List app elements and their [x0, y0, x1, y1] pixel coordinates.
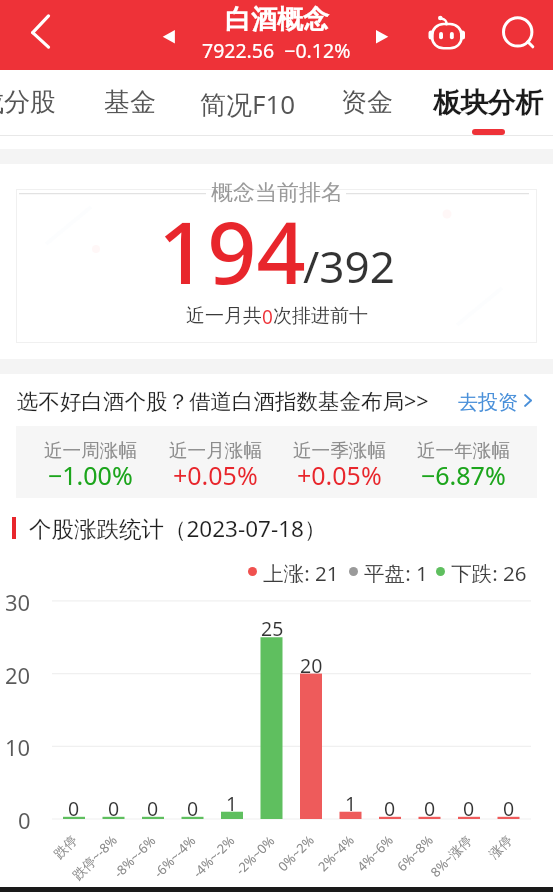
staticText: 近一周涨幅 — [44, 439, 137, 462]
staticText: 基金 — [104, 86, 156, 119]
staticText: 成分股 — [0, 86, 56, 119]
staticText: 上涨: 21 — [263, 559, 339, 583]
staticText: −1.00% — [48, 458, 133, 492]
staticText: 20 — [300, 652, 323, 679]
button[interactable]: AI assistant — [423, 8, 471, 56]
button[interactable]: Search — [494, 8, 542, 56]
staticText: 近一季涨幅 — [293, 439, 386, 462]
staticText: -8%~-6% — [110, 831, 160, 881]
button[interactable]: 成分股 — [0, 70, 62, 136]
staticText: 近一月涨幅 — [169, 439, 262, 462]
staticText: -2%~0% — [231, 831, 279, 879]
staticText: 0 — [108, 795, 120, 822]
staticText: 次排进前十 — [273, 304, 368, 328]
staticText: 25 — [261, 615, 284, 642]
staticText: 4%~6% — [353, 831, 397, 875]
staticText: 1 — [226, 790, 238, 817]
button[interactable]: Previous sector — [148, 16, 190, 58]
staticText: 平盘: 1 — [364, 559, 428, 583]
button[interactable]: 简况F10 — [196, 70, 300, 136]
staticText: +0.05% — [173, 458, 258, 492]
button[interactable]: 选不好白酒个股？借道白酒指数基金布局>> — [0, 381, 553, 421]
staticText: 1 — [345, 790, 357, 817]
staticText: 6%~8% — [393, 831, 437, 875]
staticText: 7922.56 −0.12% — [202, 37, 351, 64]
button[interactable]: 资金 — [335, 70, 399, 136]
staticText: -4%~-2% — [189, 831, 239, 881]
staticText: 0 — [424, 795, 436, 822]
staticText: 资金 — [341, 86, 393, 119]
staticText: 个股涨跌统计（2023-07-18） — [29, 513, 327, 543]
staticText: 0 — [262, 304, 273, 330]
staticText: 0 — [68, 795, 80, 822]
staticText: 简况F10 — [200, 86, 296, 122]
staticText: 0%~2% — [274, 831, 318, 875]
button[interactable]: 基金 — [98, 70, 162, 136]
staticText: +0.05% — [297, 458, 382, 492]
staticText: 0 — [187, 795, 199, 822]
staticText: 194 — [158, 192, 306, 309]
button[interactable]: 板块分析 — [428, 70, 548, 136]
staticText: 板块分析 — [433, 86, 543, 121]
staticText: 白酒概念 — [225, 3, 329, 36]
staticText: 30 — [5, 587, 31, 617]
staticText: 20 — [5, 660, 31, 690]
staticText: 10 — [5, 732, 31, 762]
staticText: 0 — [384, 795, 396, 822]
staticText: /392 — [303, 236, 395, 296]
staticText: 0 — [18, 805, 31, 835]
staticText: 涨停 — [485, 832, 515, 862]
staticText: -6%~-4% — [150, 831, 200, 881]
button[interactable]: Next sector — [362, 16, 404, 58]
staticText: 跌停 — [50, 832, 80, 862]
staticText: 0 — [503, 795, 515, 822]
button[interactable]: Back — [12, 9, 64, 61]
staticText: 概念当前排名 — [211, 179, 343, 207]
staticText: 8%~涨停 — [426, 831, 476, 881]
staticText: 跌停~-8% — [68, 831, 121, 883]
staticText: 近一月共 — [186, 304, 262, 328]
staticText: 0 — [147, 795, 159, 822]
staticText: 0 — [463, 795, 475, 822]
staticText: 近一年涨幅 — [417, 439, 510, 462]
staticText: 2%~4% — [314, 831, 358, 875]
staticText: −6.87% — [421, 458, 506, 492]
staticText: 选不好白酒个股？借道白酒指数基金布局>> — [17, 386, 429, 415]
staticText: 下跌: 26 — [451, 559, 527, 583]
staticText: 去投资 — [458, 390, 518, 415]
